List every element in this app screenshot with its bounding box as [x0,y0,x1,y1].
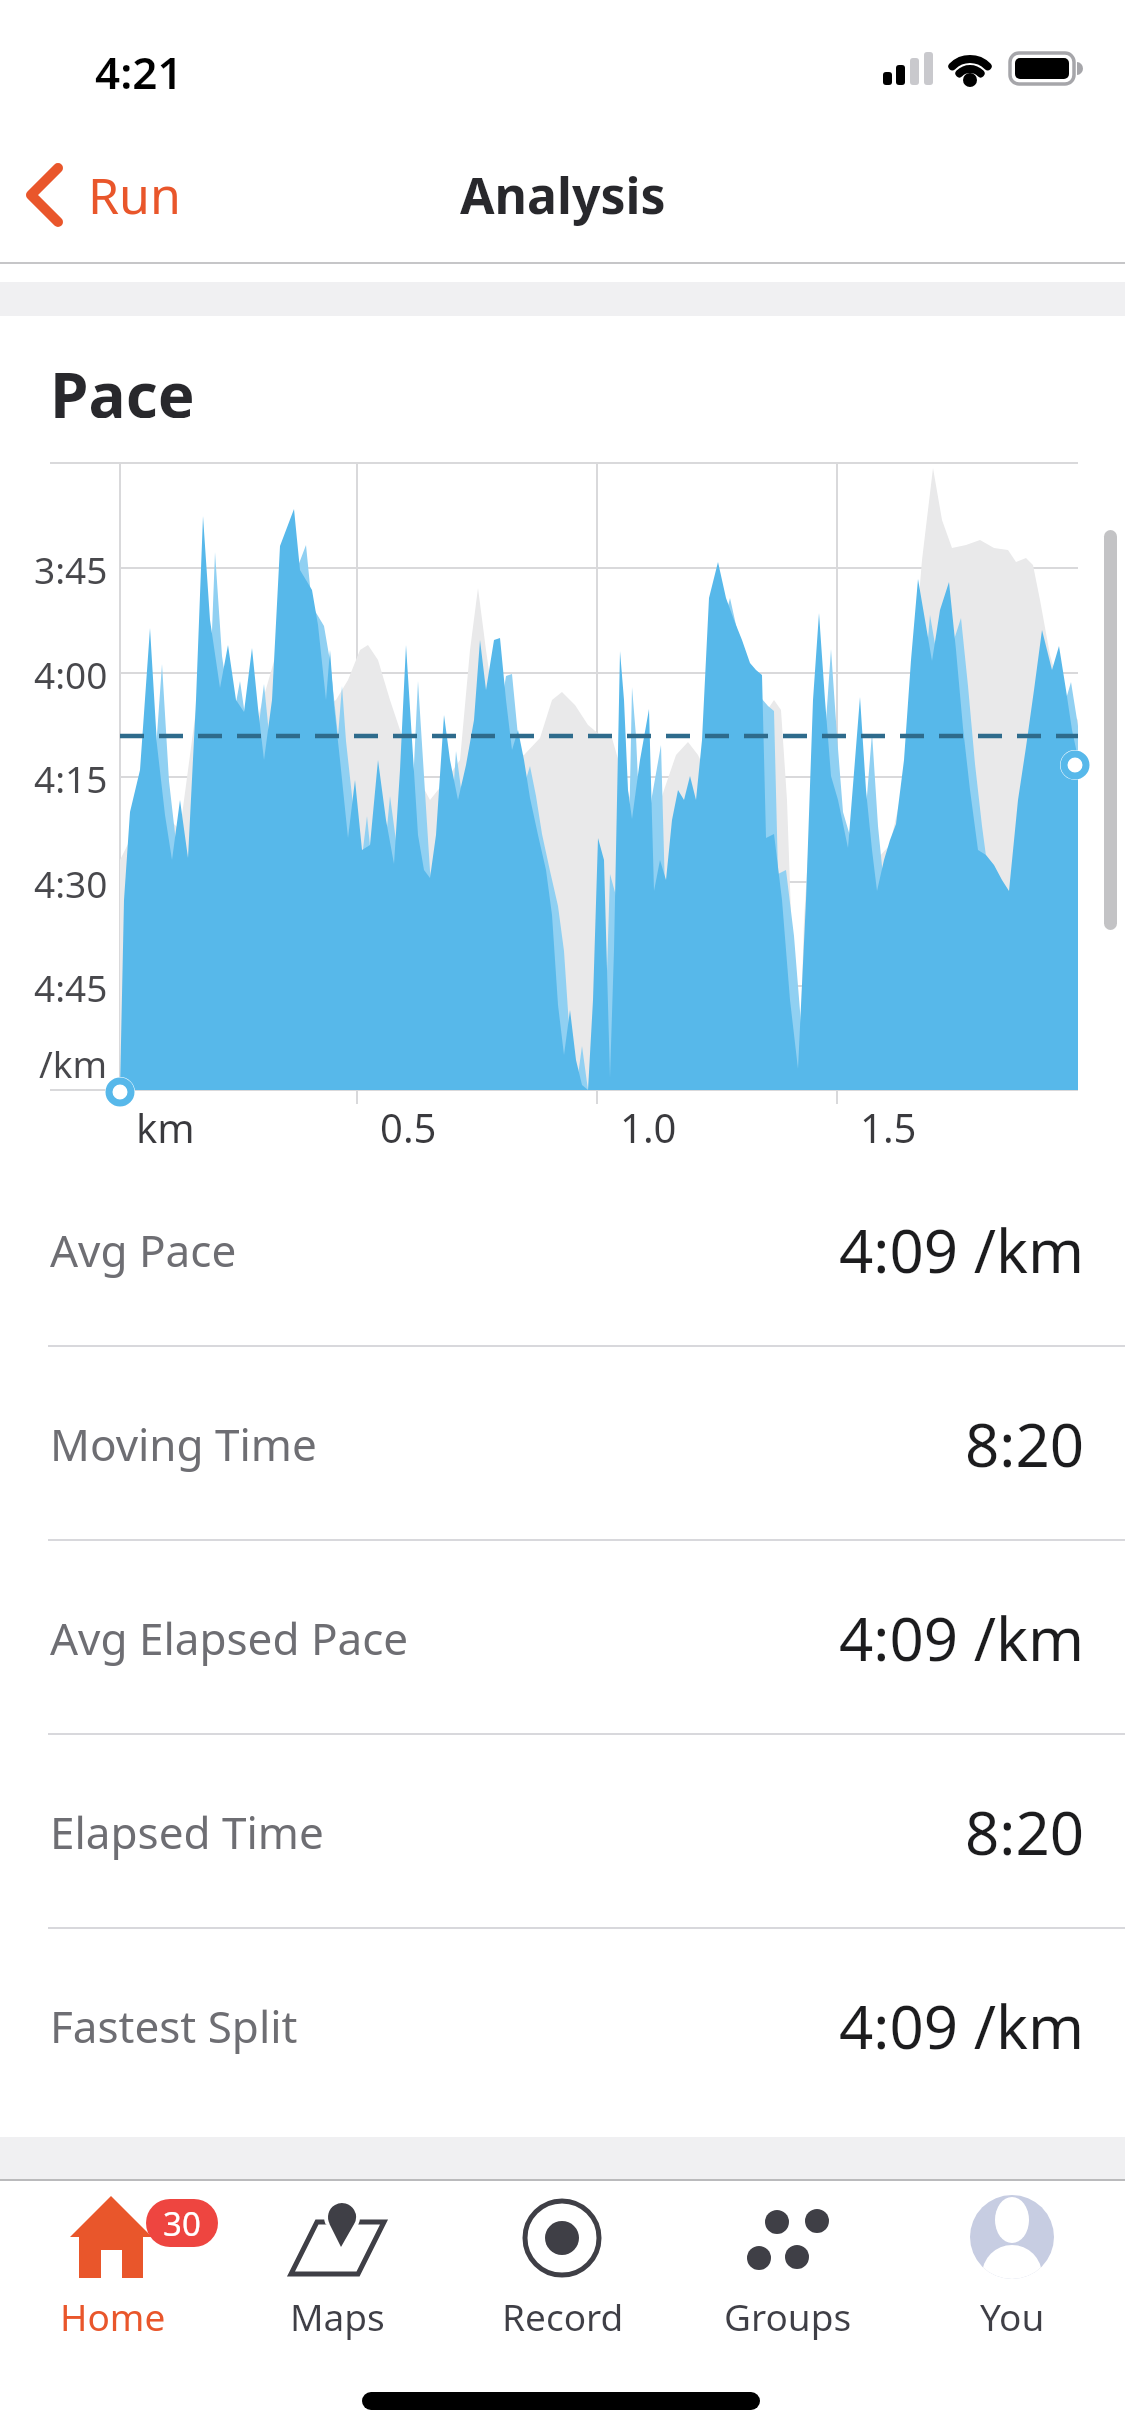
staticText: 8:20 [965,1403,1085,1485]
staticText: Avg Pace [50,1220,237,1280]
staticText: Elapsed Time [50,1802,324,1862]
staticText: 4:00 [34,649,108,697]
staticText: Home [60,2291,166,2341]
staticText: 1.5 [860,1100,917,1152]
button[interactable]: Avg Elapsed Pace [0,1578,1125,1698]
staticText: 4:09 /km [839,1597,1085,1679]
staticText: /km [39,1038,108,1086]
staticText: 4:15 [34,753,108,801]
button[interactable]: Fastest Split [0,1966,1125,2086]
button[interactable]: Avg Pace [0,1190,1125,1310]
button[interactable]: Home [0,2181,225,2341]
staticText: Pace [50,352,195,418]
button[interactable]: You [900,2181,1125,2341]
staticText: 4:45 [34,962,108,1010]
button[interactable]: Moving Time [0,1384,1125,1504]
staticText: 4:30 [34,858,108,906]
staticText: You [980,2291,1045,2341]
button[interactable]: Record [450,2181,675,2341]
button[interactable]: Groups [675,2181,900,2341]
staticText: Moving Time [50,1414,317,1474]
staticText: 8:20 [965,1791,1085,1873]
staticText: Record [502,2291,624,2341]
staticText: Avg Elapsed Pace [50,1608,409,1668]
button[interactable]: Elapsed Time [0,1772,1125,1892]
staticText: 30 [163,2201,201,2246]
staticText: 4:09 /km [839,1209,1085,1291]
staticText: 1.0 [620,1100,677,1152]
staticText: 0.5 [380,1100,437,1152]
staticText: Run [88,161,181,229]
staticText: 4:09 /km [839,1985,1085,2067]
button[interactable]: Maps [225,2181,450,2341]
staticText: Maps [290,2291,385,2341]
button[interactable]: Run [20,160,181,230]
staticText: 4:21 [95,42,183,94]
staticText: 3:45 [34,544,108,592]
staticText: Analysis [460,161,666,229]
staticText: Groups [724,2291,852,2341]
staticText: Fastest Split [50,1996,298,2056]
staticText: km [136,1100,195,1152]
